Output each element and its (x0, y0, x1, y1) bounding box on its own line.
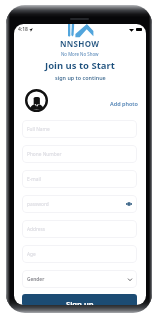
button[interactable]: Full Name (22, 120, 137, 138)
staticText: Phone Number (27, 151, 62, 158)
other: Profile photo (25, 89, 48, 112)
staticText: sign up to continue (55, 74, 106, 81)
button[interactable]: E-mail (22, 170, 137, 188)
staticText: Age (27, 251, 36, 258)
button[interactable]: Age (22, 245, 137, 263)
button[interactable]: Phone Number (22, 145, 137, 163)
staticText: 4:18 (18, 26, 28, 33)
staticText: E-mail (27, 176, 41, 183)
staticText: Add photo (110, 100, 138, 107)
button[interactable]: Add photo (107, 97, 141, 110)
staticText: Full Name (27, 126, 50, 133)
staticText: No More No Show (61, 51, 99, 57)
button[interactable]: Address (22, 220, 137, 238)
button[interactable]: password (22, 195, 137, 213)
other: Show password (126, 202, 132, 206)
staticText: NNSHOW (60, 38, 100, 49)
staticText: Gender (27, 276, 45, 283)
staticText: Join us to Start (45, 59, 115, 72)
staticText: password (27, 201, 49, 208)
button[interactable]: Sign up (22, 294, 137, 305)
other: Select gender (128, 278, 132, 281)
staticText: Sign up (66, 299, 94, 305)
button[interactable]: Gender (22, 270, 137, 288)
staticText: Address (27, 226, 46, 233)
